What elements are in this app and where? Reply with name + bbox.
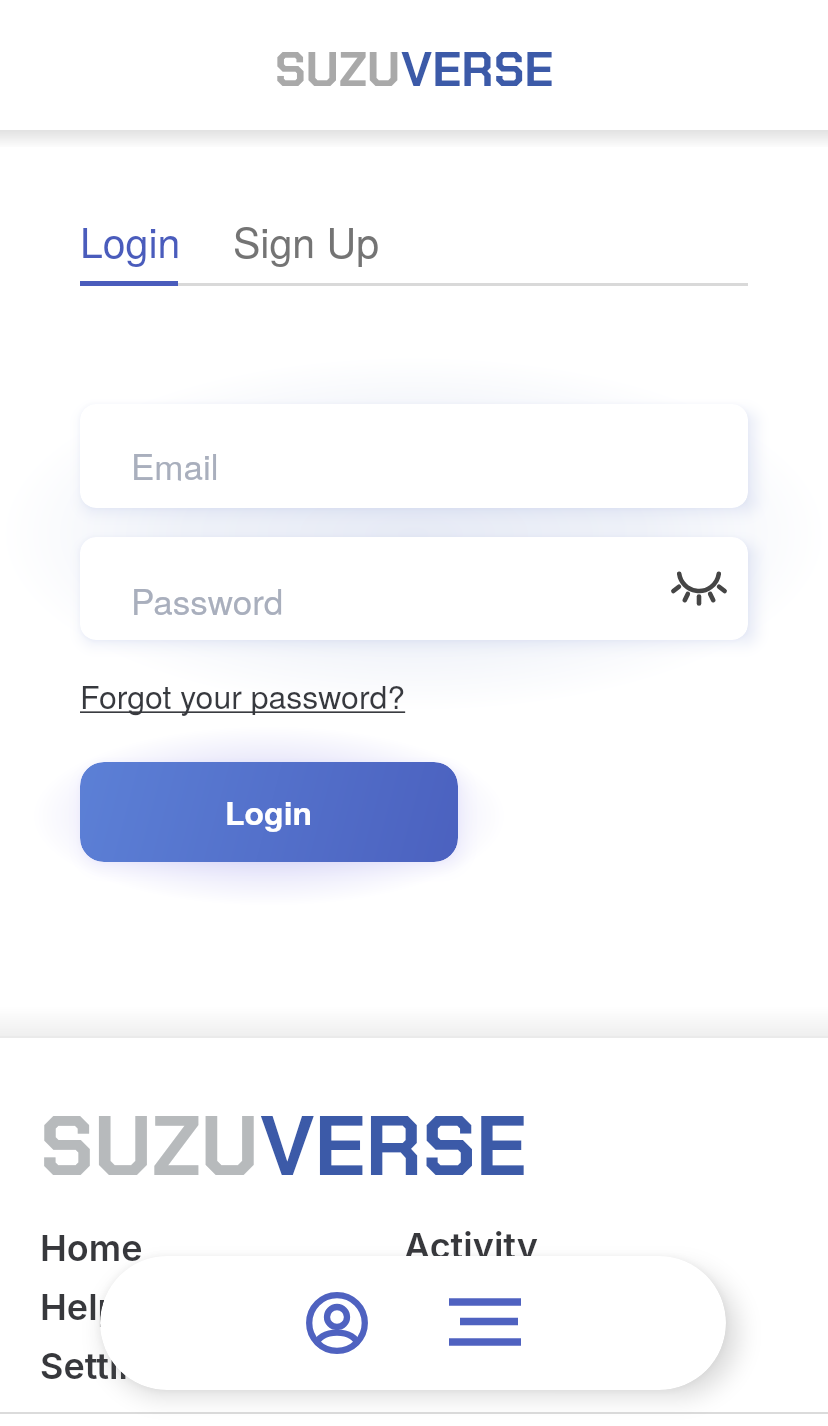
button[interactable]: Login [80, 211, 181, 270]
button[interactable] [304, 1290, 370, 1356]
staticText: Contact [404, 1283, 542, 1327]
button[interactable]: Help [40, 1285, 121, 1329]
staticText: Home [40, 1226, 143, 1270]
staticText: Sign Up [233, 211, 380, 270]
button[interactable]: Password [80, 537, 748, 640]
button[interactable]: Activity [404, 1224, 538, 1268]
staticText: Login [80, 211, 181, 270]
button[interactable] [675, 565, 723, 613]
button[interactable]: Email [80, 404, 748, 508]
staticText: Forgot your password? [80, 672, 406, 718]
button[interactable]: Forgot your password? [80, 672, 406, 718]
staticText: SUZU [275, 38, 401, 100]
staticText: SUZU [40, 1092, 260, 1201]
button[interactable]: Home [40, 1226, 143, 1270]
button[interactable]: Login [80, 762, 458, 862]
staticText: Email [131, 440, 219, 490]
staticText: Activity [404, 1224, 538, 1268]
button[interactable]: Settings [40, 1344, 183, 1388]
staticText: Settings [40, 1344, 183, 1388]
button[interactable]: Sign Up [233, 211, 380, 270]
staticText: VERSE [260, 1092, 527, 1201]
staticText: VERSE [401, 38, 554, 100]
staticText: Login [225, 789, 313, 835]
button[interactable] [449, 1290, 522, 1356]
button[interactable]: Contact [404, 1283, 542, 1327]
staticText: Password [131, 575, 284, 625]
staticText: Help [40, 1285, 121, 1329]
